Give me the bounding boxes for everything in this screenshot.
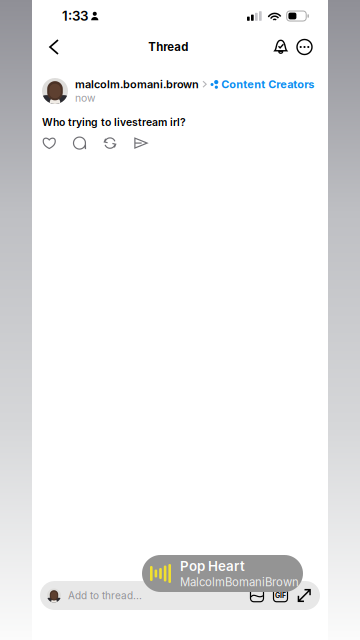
- staticText: Thread: [148, 40, 188, 54]
- staticText: Content Creators: [221, 78, 314, 91]
- staticText: Add to thread...: [68, 589, 142, 602]
- button[interactable]: Expand composer: [297, 589, 311, 602]
- button[interactable]: Notifications: [269, 35, 292, 59]
- button[interactable]: Attach GIF: [273, 589, 287, 602]
- button[interactable]: Back: [41, 35, 67, 59]
- button[interactable]: Add to thread...: [40, 581, 250, 610]
- staticText: now: [75, 92, 96, 104]
- button[interactable]: Reply: [72, 133, 86, 153]
- staticText: 1:33: [62, 8, 88, 24]
- button[interactable]: Attach photo: [250, 589, 263, 602]
- staticText: Who trying to livestream irl?: [42, 116, 186, 129]
- button[interactable]: Now playing, Pop Heart by MalcolmBomaniB…: [142, 555, 303, 592]
- button[interactable]: Repost: [102, 133, 117, 154]
- button[interactable]: Share: [133, 133, 148, 153]
- button[interactable]: Like: [42, 133, 56, 153]
- staticText: GIF: [275, 591, 286, 600]
- staticText: Pop Heart: [180, 558, 245, 574]
- staticText: MalcolmBomaniBrown: [180, 575, 299, 589]
- button[interactable]: More options: [292, 34, 317, 59]
- staticText: malcolm.bomani.brown: [75, 78, 199, 91]
